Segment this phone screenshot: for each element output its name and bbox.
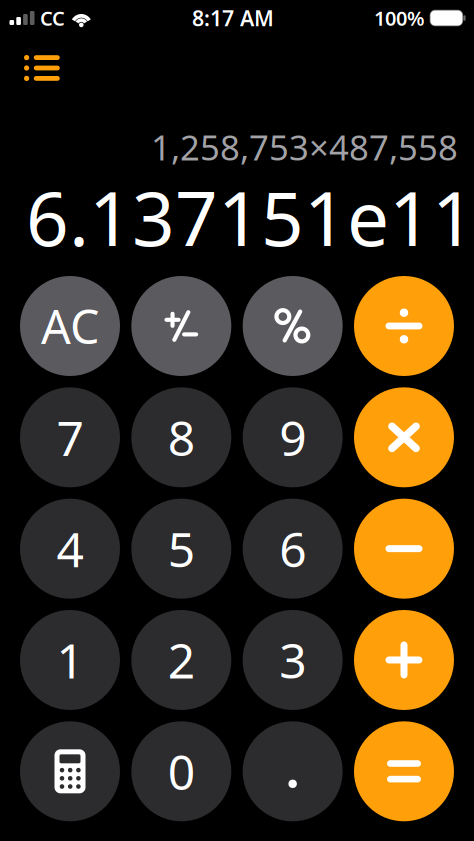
staticText: 0 — [168, 739, 195, 803]
button[interactable]: Plus minus — [131, 276, 231, 376]
staticText: 6 — [279, 517, 306, 580]
staticText: 7 — [56, 405, 83, 469]
button[interactable]: Divide — [354, 276, 454, 376]
staticText: 9 — [279, 405, 306, 469]
staticText: 8 — [168, 405, 195, 469]
button[interactable]: Decimal point — [243, 721, 343, 821]
staticText: 1,258,753×487,558 — [151, 124, 458, 170]
button[interactable]: 1 — [20, 610, 120, 710]
button[interactable]: 4 — [20, 499, 120, 599]
button[interactable]: Calculator — [20, 721, 120, 821]
staticText: 6.137151e11 — [26, 167, 474, 267]
staticText: 1 — [56, 628, 83, 692]
staticText: 4 — [56, 517, 83, 580]
staticText: 3 — [279, 628, 306, 692]
button[interactable]: 0 — [131, 721, 231, 821]
button[interactable]: 8 — [131, 387, 231, 487]
button[interactable]: History — [12, 43, 72, 93]
button[interactable]: 5 — [131, 499, 231, 599]
staticText: 2 — [168, 628, 195, 692]
staticText: 8:17 AM — [192, 4, 274, 32]
button[interactable]: Percent — [243, 276, 343, 376]
button[interactable]: 3 — [243, 610, 343, 710]
button[interactable]: Subtract — [354, 499, 454, 599]
staticText: 5 — [168, 517, 195, 580]
button[interactable]: Equals — [354, 721, 454, 821]
button[interactable]: Add — [354, 610, 454, 710]
button[interactable]: 7 — [20, 387, 120, 487]
staticText: 100% — [374, 5, 425, 31]
staticText: AC — [41, 295, 99, 357]
button[interactable]: 9 — [243, 387, 343, 487]
staticText: CC — [40, 5, 65, 31]
button[interactable]: 2 — [131, 610, 231, 710]
button[interactable]: 6 — [243, 499, 343, 599]
button[interactable]: AC — [20, 276, 120, 376]
button[interactable]: Multiply — [354, 387, 454, 487]
